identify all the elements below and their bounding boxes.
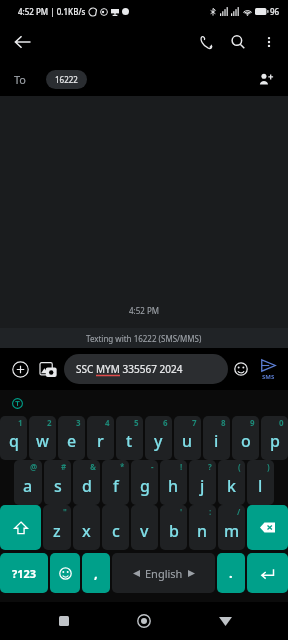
- staticText: o: [241, 430, 251, 452]
- staticText: v: [140, 520, 149, 542]
- staticText: k: [227, 475, 236, 497]
- button[interactable]: Back: [208, 604, 242, 638]
- staticText: f: [113, 475, 119, 497]
- staticText: q: [9, 430, 19, 452]
- staticText: x: [82, 520, 91, 542]
- button[interactable]: Shift: [0, 505, 41, 550]
- staticText: /: [237, 506, 241, 517]
- button[interactable]: Send SMS: [254, 352, 282, 386]
- button[interactable]: Back: [6, 25, 40, 59]
- staticText: g: [140, 475, 150, 497]
- button[interactable]: Symbols: [0, 553, 48, 593]
- staticText: 96: [270, 6, 280, 17]
- staticText: SSC: [76, 362, 96, 376]
- button[interactable]: 5: [116, 416, 143, 460]
- button[interactable]: ': [160, 505, 187, 550]
- button[interactable]: Emoji: [50, 553, 80, 593]
- button[interactable]: 1: [0, 416, 27, 460]
- staticText: 8: [221, 417, 226, 428]
- button[interactable]: &: [73, 460, 100, 505]
- button[interactable]: SSC: [64, 354, 228, 384]
- button[interactable]: Comma: [82, 553, 110, 593]
- staticText: 9: [250, 417, 255, 428]
- staticText: h: [168, 475, 179, 497]
- staticText: z: [53, 520, 61, 542]
- staticText: d: [82, 475, 92, 497]
- button[interactable]: #: [44, 460, 71, 505]
- staticText: r: [97, 430, 104, 452]
- staticText: 6: [163, 417, 168, 428]
- button[interactable]: Emoji: [228, 356, 254, 382]
- button[interactable]: Enter: [247, 553, 288, 593]
- staticText: s: [54, 475, 62, 497]
- button[interactable]: c: [102, 505, 129, 550]
- staticText: 4:52 PM: [0, 305, 288, 316]
- staticText: i: [214, 430, 219, 452]
- button[interactable]: v: [131, 505, 158, 550]
- button[interactable]: !: [160, 460, 187, 505]
- button[interactable]: 16222: [46, 70, 87, 89]
- staticText: c: [112, 520, 120, 542]
- staticText: (: [238, 461, 241, 472]
- staticText: SMS: [262, 373, 275, 381]
- staticText: .: [229, 564, 233, 582]
- button[interactable]: Backspace: [247, 505, 288, 550]
- button[interactable]: English: [112, 553, 215, 593]
- button[interactable]: ": [43, 505, 71, 550]
- staticText: p: [270, 430, 280, 452]
- staticText: j: [200, 475, 205, 497]
- button[interactable]: ): [247, 460, 274, 505]
- button[interactable]: *: [102, 460, 129, 505]
- staticText: *: [120, 461, 125, 472]
- staticText: -: [151, 461, 154, 472]
- staticText: 0: [279, 417, 284, 428]
- staticText: Texting with 16222 (SMS/MMS): [86, 333, 202, 344]
- staticText: 3: [76, 417, 81, 428]
- staticText: @: [30, 461, 38, 472]
- staticText: ,: [94, 564, 98, 582]
- button[interactable]: 9: [232, 416, 259, 460]
- button[interactable]: Recents: [47, 604, 81, 638]
- button[interactable]: :: [189, 505, 216, 550]
- staticText: 335567 2024: [120, 362, 183, 376]
- button[interactable]: ?: [189, 460, 216, 505]
- staticText: ?: [208, 461, 212, 472]
- staticText: 16222: [55, 74, 78, 85]
- button[interactable]: 3: [58, 416, 85, 460]
- button[interactable]: (: [218, 460, 245, 505]
- button[interactable]: 4: [87, 416, 114, 460]
- staticText: l: [258, 475, 263, 497]
- button[interactable]: -: [131, 460, 158, 505]
- staticText: ?123: [12, 566, 37, 581]
- staticText: MYM: [96, 362, 120, 376]
- button[interactable]: 2: [29, 416, 56, 460]
- button[interactable]: Gallery: [34, 355, 62, 383]
- staticText: 4: [105, 417, 110, 428]
- button[interactable]: Translate: [8, 394, 26, 412]
- button[interactable]: Add contact: [252, 65, 280, 93]
- staticText: m: [224, 520, 240, 542]
- button[interactable]: Search: [222, 26, 254, 58]
- button[interactable]: 0: [261, 416, 288, 460]
- staticText: u: [182, 430, 193, 452]
- staticText: !: [180, 461, 183, 472]
- staticText: ': [180, 506, 183, 517]
- button[interactable]: /: [218, 505, 245, 550]
- staticText: e: [67, 430, 77, 452]
- button[interactable]: Attach: [6, 355, 34, 383]
- staticText: 1: [18, 417, 23, 428]
- button[interactable]: 8: [203, 416, 230, 460]
- button[interactable]: More options: [254, 27, 284, 57]
- staticText: ": [63, 506, 67, 517]
- button[interactable]: @: [14, 460, 42, 505]
- staticText: 7: [192, 417, 197, 428]
- staticText: To: [14, 72, 27, 87]
- staticText: ): [267, 461, 270, 472]
- button[interactable]: 6: [145, 416, 172, 460]
- button[interactable]: Home: [127, 604, 161, 638]
- staticText: a: [23, 475, 33, 497]
- button[interactable]: x: [73, 505, 100, 550]
- button[interactable]: Call: [190, 26, 222, 58]
- button[interactable]: 7: [174, 416, 201, 460]
- button[interactable]: Period: [217, 553, 245, 593]
